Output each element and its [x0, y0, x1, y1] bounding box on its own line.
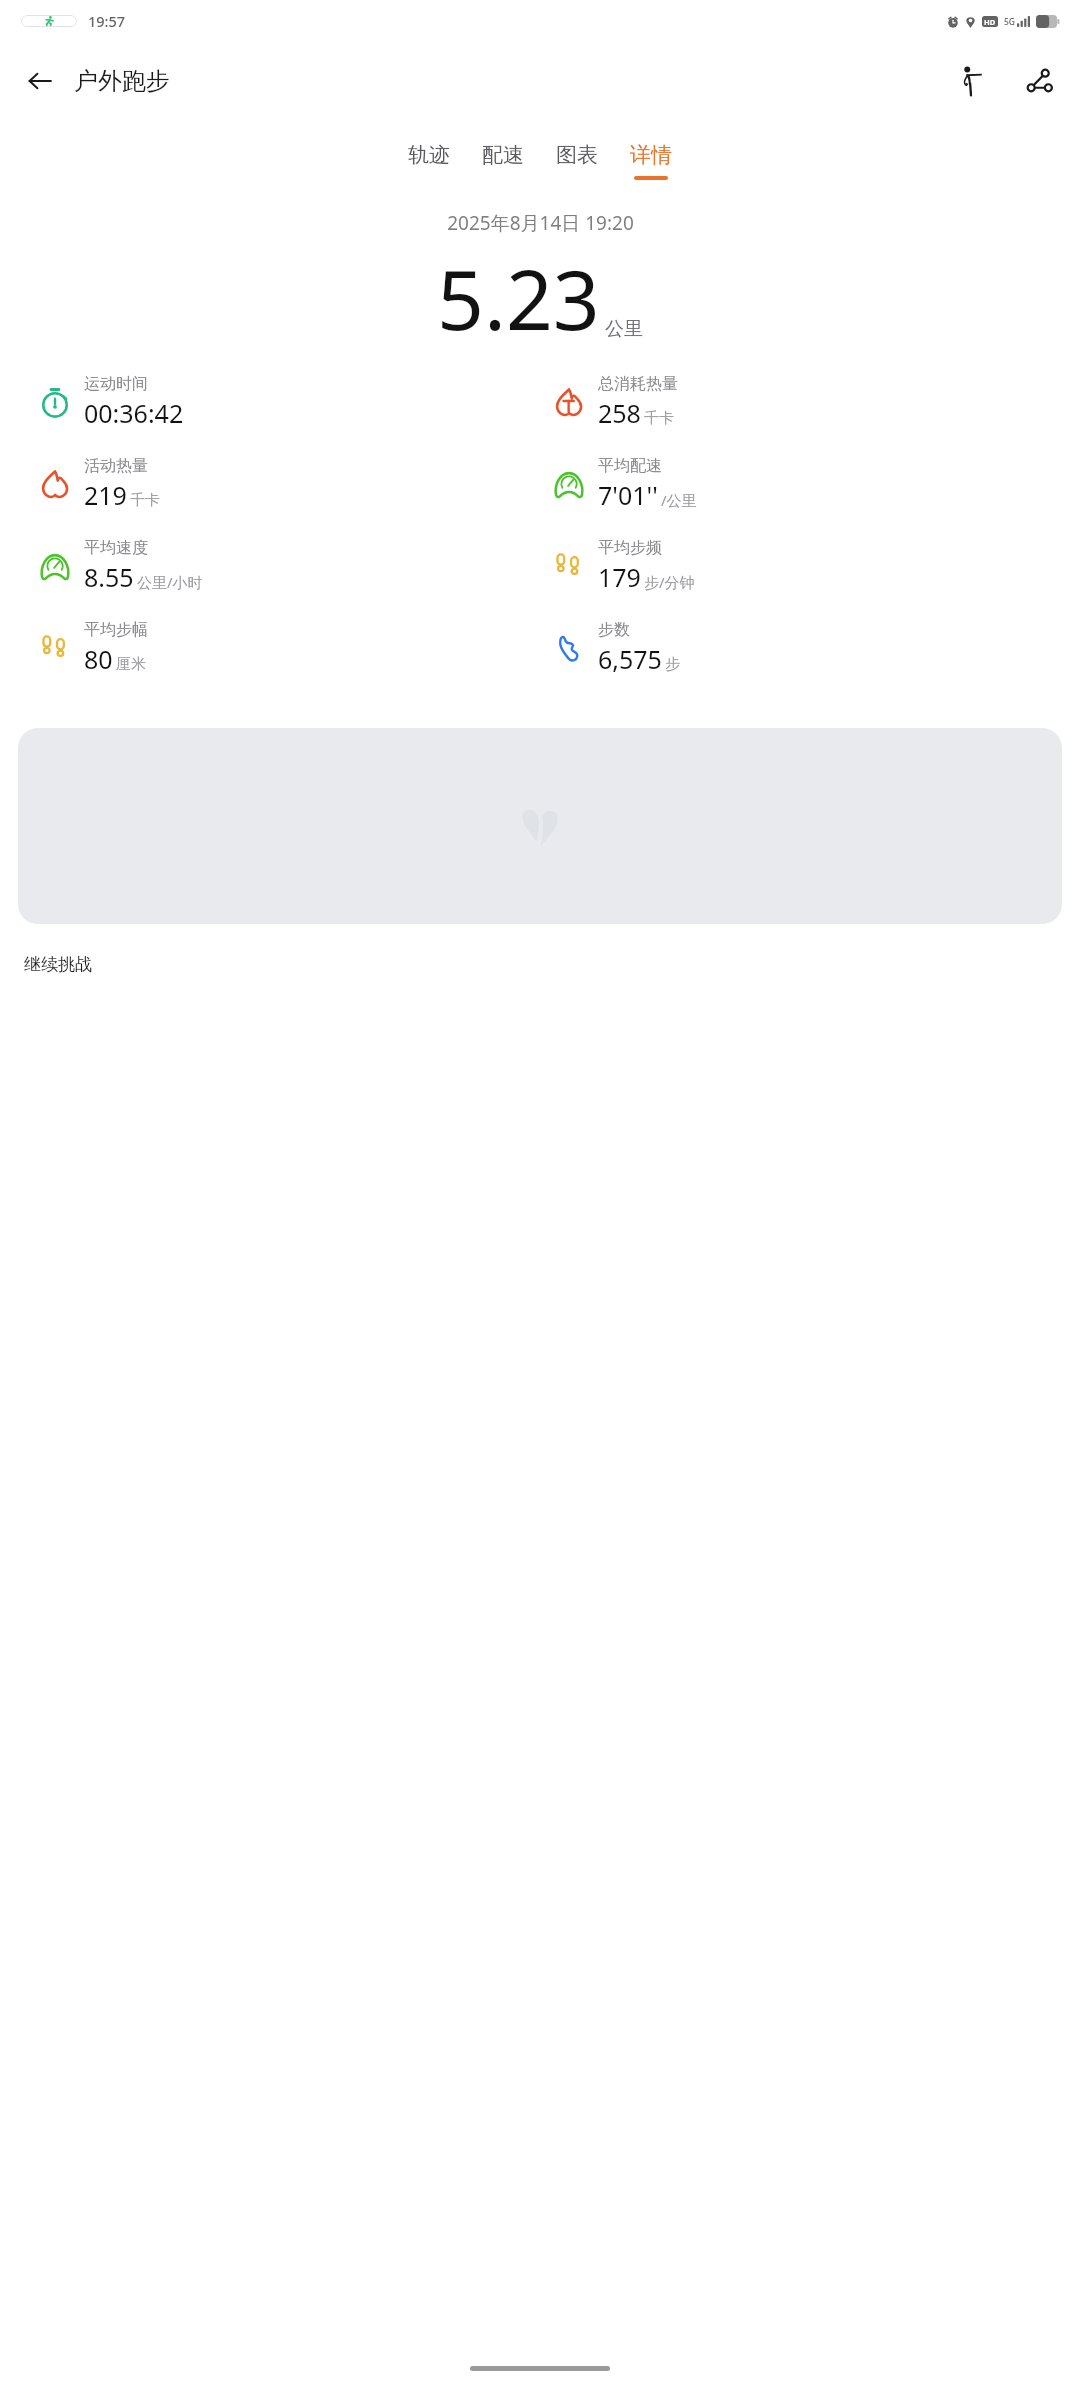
staticText: 千卡 [644, 409, 674, 428]
staticText: 步 [665, 655, 680, 674]
staticText: 千卡 [130, 491, 160, 510]
staticText: 258 [598, 396, 641, 430]
staticText: HD [984, 17, 996, 27]
staticText: 轨迹 [408, 142, 450, 168]
staticText: 平均速度 [84, 538, 148, 558]
button[interactable]: 步数 [540, 618, 1080, 678]
staticText: 平均配速 [598, 456, 662, 476]
staticText: 5G [1004, 16, 1016, 28]
staticText: 19:57 [88, 11, 126, 31]
staticText: 00:36:42 [84, 396, 184, 430]
staticText: 219 [84, 478, 127, 512]
button[interactable]: 图表 [540, 138, 614, 184]
staticText: 5.23 [437, 242, 600, 354]
staticText: /公里 [661, 490, 697, 510]
button[interactable]: 分享 [1012, 54, 1066, 108]
staticText: 179 [598, 560, 641, 594]
button[interactable]: 返回 [12, 53, 68, 109]
button[interactable]: 平均步频 [540, 536, 1080, 596]
staticText: 平均步频 [598, 538, 662, 558]
staticText: 总消耗热量 [598, 374, 678, 394]
staticText: 户外跑步 [74, 66, 170, 96]
staticText: 图表 [556, 142, 598, 168]
button[interactable]: 轨迹 [392, 138, 466, 184]
button[interactable]: 继续挑战 [0, 952, 92, 977]
staticText: 6,575 [598, 642, 662, 676]
staticText: 7'01'' [598, 478, 658, 512]
staticText: 活动热量 [84, 456, 148, 476]
button[interactable]: 运动姿态 [944, 54, 998, 108]
button[interactable]: 平均步幅 [0, 618, 540, 678]
button[interactable]: 总消耗热量 [540, 372, 1080, 432]
button[interactable]: 运动时间 [0, 372, 540, 432]
staticText: 公里/小时 [137, 572, 203, 592]
staticText: 2025年8月14日 19:20 [447, 210, 634, 236]
staticText: 80 [84, 642, 113, 676]
staticText: 公里 [605, 317, 643, 341]
button[interactable]: 活动热量 [0, 454, 540, 514]
staticText: 详情 [630, 142, 672, 168]
staticText: 平均步幅 [84, 620, 148, 640]
staticText: 8.55 [84, 560, 134, 594]
staticText: 步数 [598, 620, 630, 640]
button[interactable]: 平均速度 [0, 536, 540, 596]
staticText: 配速 [482, 142, 524, 168]
staticText: 厘米 [116, 655, 146, 674]
button[interactable]: 详情 [614, 138, 688, 184]
staticText: 运动时间 [84, 374, 148, 394]
button[interactable]: 配速 [466, 138, 540, 184]
staticText: 步/分钟 [644, 572, 695, 592]
button[interactable]: 平均配速 [540, 454, 1080, 514]
